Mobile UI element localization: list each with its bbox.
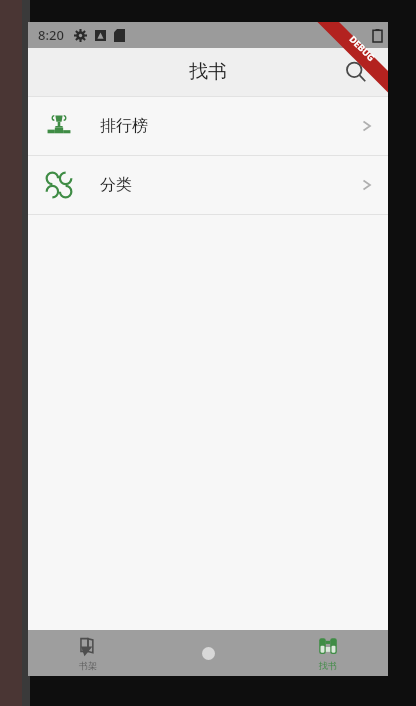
staticText: 书架 — [79, 660, 97, 671]
button[interactable]: 找书 — [268, 630, 388, 676]
staticText: 分类 — [100, 175, 132, 195]
button[interactable]: Search — [336, 52, 376, 92]
staticText: 排行榜 — [100, 116, 148, 136]
staticText: 找书 — [189, 60, 227, 84]
button[interactable]: 排行榜 — [28, 97, 388, 155]
staticText: 找书 — [319, 660, 337, 671]
button[interactable]: 分类 — [28, 156, 388, 214]
staticText: DEBUG — [347, 33, 378, 63]
staticText: 8:20 — [38, 26, 64, 44]
button[interactable]: 书架 — [28, 630, 148, 676]
